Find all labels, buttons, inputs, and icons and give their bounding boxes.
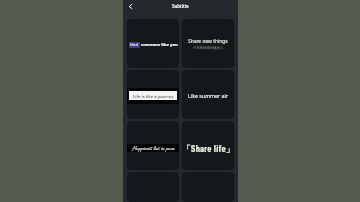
- staticText: Like summer air: [188, 92, 229, 99]
- button[interactable]: 「Share life」: [182, 121, 234, 170]
- staticText: Happiness lies in pace: [132, 145, 175, 152]
- button[interactable]: find: [127, 19, 179, 68]
- staticText: 分享新鲜事给懂的人: [193, 46, 224, 50]
- button[interactable]: Share new things: [182, 19, 234, 68]
- staticText: Life is like a journey: [133, 93, 174, 99]
- staticText: find: [130, 42, 139, 48]
- staticText: 「Share life」: [182, 144, 234, 155]
- staticText: Share new things: [188, 38, 228, 45]
- button[interactable]: Happiness lies in pace: [127, 121, 179, 170]
- button[interactable]: Back: [125, 1, 136, 12]
- staticText: someone like you: [140, 42, 178, 48]
- button[interactable]: Life is like a journey: [127, 70, 179, 119]
- button[interactable]: Like summer air: [182, 70, 234, 119]
- staticText: Subtitle: [172, 3, 189, 9]
